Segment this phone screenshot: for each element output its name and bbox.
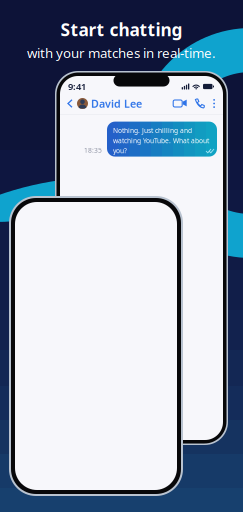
staticText: David Lee	[91, 96, 142, 111]
staticText: Nothing. Just chilling and	[113, 126, 192, 135]
staticText: watching YouTube. What about	[113, 136, 209, 145]
staticText: you?	[113, 146, 127, 155]
staticText: 18:35	[84, 146, 102, 155]
staticText: 9:41	[68, 80, 86, 93]
staticText: Start chatting	[60, 18, 182, 41]
staticText: with your matches in real-time.	[27, 44, 216, 62]
